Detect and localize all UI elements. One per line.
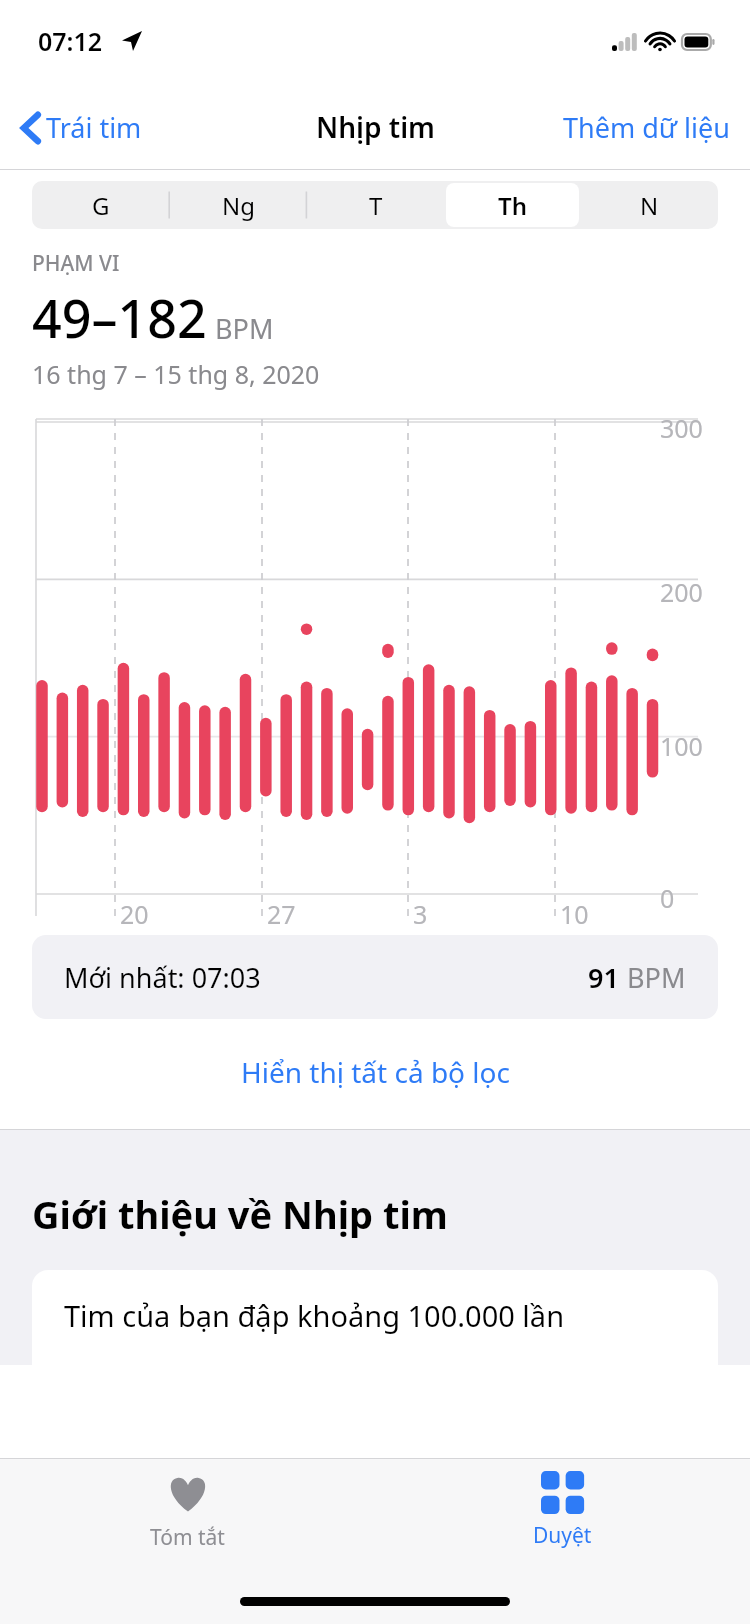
staticText: BPM bbox=[215, 310, 274, 347]
staticText: Duyệt bbox=[533, 1521, 592, 1550]
staticText: PHẠM VI bbox=[32, 249, 120, 278]
staticText: Tim của bạn đập khoảng 100.000 lần bbox=[64, 1296, 565, 1335]
button[interactable]: Tóm tắt bbox=[0, 1459, 375, 1552]
staticText: Tóm tắt bbox=[150, 1523, 225, 1552]
staticText: Ng bbox=[222, 189, 255, 222]
button[interactable]: Mới nhất: 07:03 bbox=[32, 935, 718, 1019]
staticText: 200 bbox=[660, 575, 703, 609]
staticText: Mới nhất: 07:03 bbox=[64, 959, 261, 996]
staticText: 27 bbox=[267, 897, 296, 931]
staticText: 16 thg 7 – 15 thg 8, 2020 bbox=[32, 357, 320, 391]
button[interactable]: Duyệt bbox=[375, 1459, 750, 1550]
button[interactable]: Hiển thị tất cả bộ lọc bbox=[0, 1045, 750, 1099]
button[interactable]: Th bbox=[446, 183, 579, 227]
staticText: Giới thiệu về Nhịp tim bbox=[32, 1188, 448, 1240]
staticText: 100 bbox=[660, 729, 703, 763]
staticText: 49–182 bbox=[32, 282, 207, 353]
staticText: Th bbox=[498, 189, 527, 222]
button[interactable]: N bbox=[583, 183, 716, 227]
staticText: Nhịp tim bbox=[316, 108, 435, 146]
staticText: 3 bbox=[413, 897, 428, 931]
button[interactable]: T bbox=[309, 183, 442, 227]
staticText: 0 bbox=[660, 881, 675, 915]
button[interactable]: Thêm dữ liệu bbox=[557, 101, 736, 154]
button[interactable]: Ng bbox=[172, 183, 305, 227]
staticText: N bbox=[640, 189, 659, 222]
staticText: Thêm dữ liệu bbox=[563, 109, 730, 146]
staticText: 07:12 bbox=[38, 24, 103, 58]
staticText: Hiển thị tất cả bộ lọc bbox=[241, 1053, 510, 1091]
staticText: BPM bbox=[627, 959, 686, 996]
button[interactable]: Tim của bạn đập khoảng 100.000 lần bbox=[32, 1270, 718, 1365]
staticText: 10 bbox=[560, 897, 589, 931]
staticText: 91 bbox=[588, 959, 619, 996]
other: Tóm tắt bbox=[165, 1471, 211, 1517]
staticText: 20 bbox=[120, 897, 149, 931]
other: Duyệt bbox=[541, 1471, 585, 1515]
staticText: Trái tim bbox=[46, 109, 142, 146]
staticText: G bbox=[92, 189, 110, 222]
staticText: T bbox=[369, 189, 383, 222]
button[interactable]: G bbox=[34, 183, 168, 227]
button[interactable]: Trái tim bbox=[16, 101, 148, 154]
staticText: 300 bbox=[660, 411, 703, 445]
